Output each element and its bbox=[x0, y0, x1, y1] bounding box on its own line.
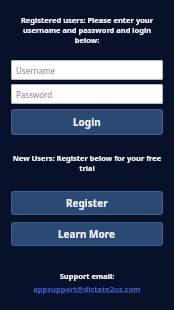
staticText: Username bbox=[16, 65, 55, 76]
staticText: Registered users: Please enter your user… bbox=[11, 15, 163, 45]
staticText: Register bbox=[66, 196, 108, 210]
button[interactable]: Password bbox=[11, 84, 163, 104]
staticText: Login bbox=[73, 115, 101, 129]
button[interactable]: Login bbox=[11, 109, 163, 135]
staticText: Learn More bbox=[58, 227, 116, 241]
staticText: Password bbox=[16, 89, 53, 100]
staticText: Support email: bbox=[11, 271, 163, 281]
button[interactable]: Register bbox=[11, 191, 163, 215]
button[interactable]: appsupport@dictate2us.com bbox=[11, 284, 163, 294]
button[interactable]: Learn More bbox=[11, 222, 163, 246]
button[interactable]: Username bbox=[11, 60, 163, 80]
staticText: New Users: Register below for your free … bbox=[11, 153, 163, 173]
